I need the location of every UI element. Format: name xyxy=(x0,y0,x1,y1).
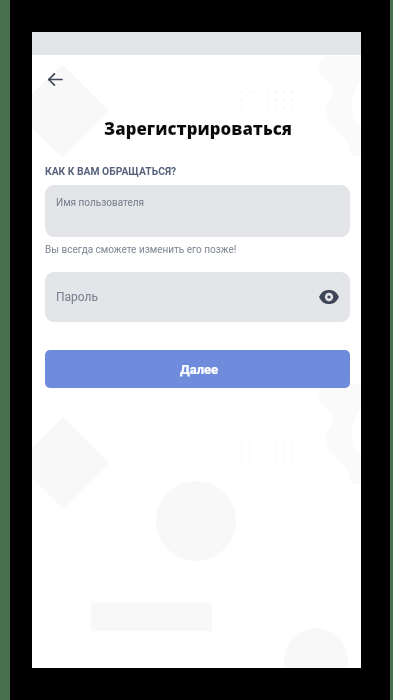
button[interactable]: Show password xyxy=(312,280,346,314)
staticText: КАК К ВАМ ОБРАЩАТЬСЯ? xyxy=(45,165,177,177)
staticText: Далее xyxy=(180,362,219,377)
staticText: Имя пользователя xyxy=(56,197,144,209)
staticText: Вы всегда сможете изменить его позже! xyxy=(45,244,237,256)
button[interactable]: Пароль xyxy=(45,272,350,322)
button[interactable]: Имя пользователя xyxy=(45,185,350,237)
staticText: Зарегистрироваться xyxy=(35,117,361,140)
staticText: Пароль xyxy=(56,290,99,304)
button[interactable]: Далее xyxy=(45,350,350,388)
button[interactable]: Back xyxy=(35,59,75,99)
